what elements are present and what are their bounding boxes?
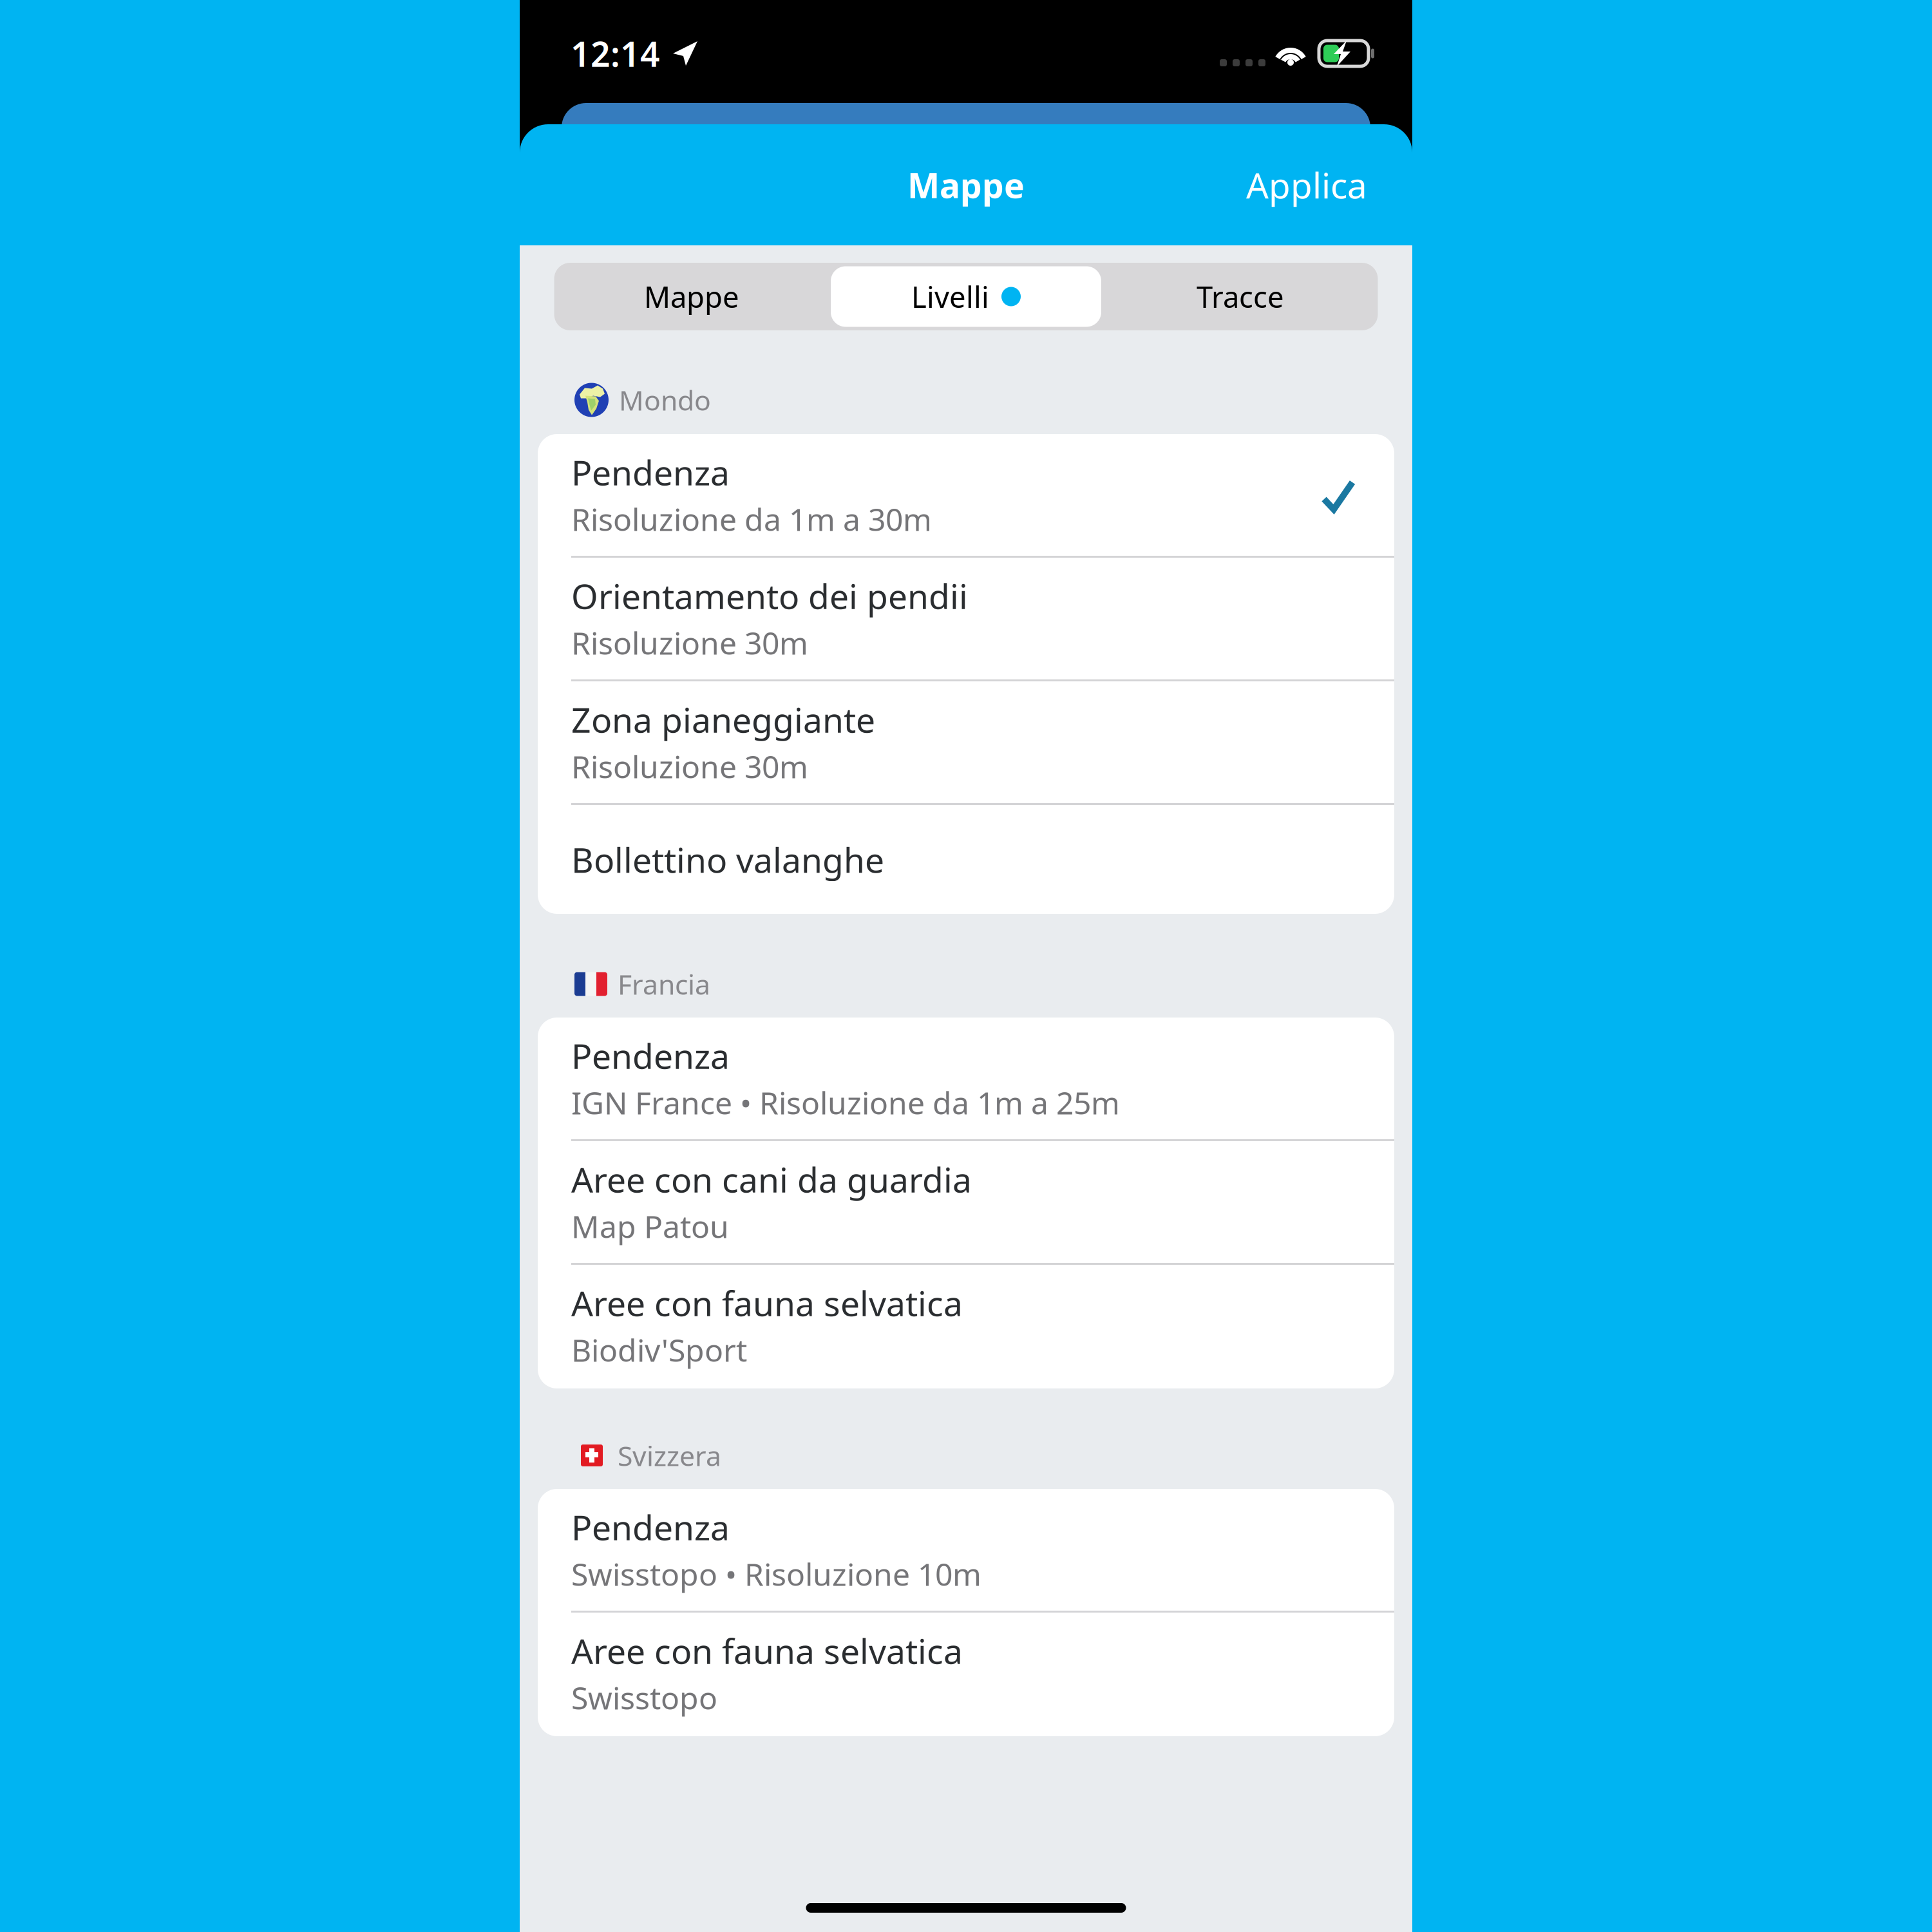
staticText: Zona pianeggiante — [571, 697, 875, 742]
staticText: Biodiv'Sport — [571, 1329, 747, 1370]
staticText: IGN France • Risoluzione da 1m a 25m — [571, 1082, 1120, 1123]
staticText: Svizzera — [618, 1437, 721, 1474]
staticText: Pendenza — [571, 449, 730, 495]
button[interactable]: Pendenza — [538, 1489, 1394, 1613]
staticText: Mondo — [619, 382, 711, 418]
staticText: Pendenza — [571, 1033, 730, 1078]
button[interactable]: Pendenza — [538, 434, 1394, 558]
button[interactable]: Aree con fauna selvatica — [538, 1265, 1394, 1388]
staticText: Swisstopo — [571, 1677, 717, 1718]
staticText: Mappe — [644, 277, 739, 316]
button[interactable]: Pendenza — [538, 1018, 1394, 1141]
button[interactable]: Orientamento dei pendii — [538, 558, 1394, 681]
button[interactable]: Zona pianeggiante — [538, 681, 1394, 805]
staticText: Mappe — [907, 162, 1025, 208]
button[interactable]: Tracce — [1103, 263, 1378, 330]
button[interactable]: Bollettino valanghe — [538, 805, 1394, 914]
staticText: Livelli — [911, 277, 989, 316]
staticText: Risoluzione 30m — [571, 622, 808, 663]
staticText: Aree con fauna selvatica — [571, 1280, 963, 1326]
staticText: 12:14 — [571, 31, 660, 76]
staticText: Swisstopo • Risoluzione 10m — [571, 1553, 981, 1594]
staticText: Aree con fauna selvatica — [571, 1628, 963, 1673]
staticText: Map Patou — [571, 1206, 729, 1247]
staticText: Bollettino valanghe — [571, 837, 884, 882]
staticText: Risoluzione 30m — [571, 746, 808, 787]
staticText: Orientamento dei pendii — [571, 573, 968, 618]
staticText: Risoluzione da 1m a 30m — [571, 499, 932, 540]
staticText: Applica — [1246, 161, 1367, 208]
staticText: Tracce — [1197, 277, 1284, 316]
button[interactable]: Livelli — [829, 263, 1103, 330]
staticText: Francia — [618, 966, 710, 1002]
staticText: Pendenza — [571, 1504, 730, 1550]
button[interactable]: Aree con fauna selvatica — [538, 1613, 1394, 1736]
button[interactable]: Mappe — [554, 263, 829, 330]
button[interactable]: Aree con cani da guardia — [538, 1141, 1394, 1265]
button[interactable]: Applica — [1220, 124, 1412, 245]
staticText: Aree con cani da guardia — [571, 1156, 972, 1202]
